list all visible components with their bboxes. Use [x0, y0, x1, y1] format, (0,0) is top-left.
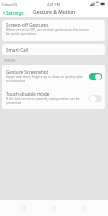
button[interactable]: Switch on: [89, 73, 102, 80]
button[interactable]: Touch-disable mode: [2, 87, 105, 109]
staticText: ColourOS: [2, 2, 18, 7]
button[interactable]: Gesture Screenshot: [2, 65, 105, 87]
staticText: Gesture Screenshot: [6, 69, 49, 75]
button[interactable]: Switch off: [89, 95, 102, 102]
staticText: Smart Call: [6, 47, 28, 53]
staticText: 4:41 PM: [47, 2, 60, 7]
staticText: Screen-off Gestures: [6, 22, 49, 28]
button[interactable]: Screen-off Gestures: [2, 20, 105, 41]
staticText: Touch-disable mode: [6, 91, 50, 97]
button[interactable]: Smart Call: [2, 44, 105, 55]
button[interactable]: Settings: [0, 10, 26, 16]
staticText: Swipe with three fingers up or down to q…: [6, 75, 83, 83]
staticText: Settings: [6, 10, 24, 16]
staticText: When screen is OFF, use custom gestures …: [6, 28, 89, 36]
staticText: Gesture & Motion: [33, 9, 76, 16]
staticText: If the lock screen is covered, misoperat…: [6, 97, 80, 105]
staticText: OTHERS: [4, 59, 16, 63]
